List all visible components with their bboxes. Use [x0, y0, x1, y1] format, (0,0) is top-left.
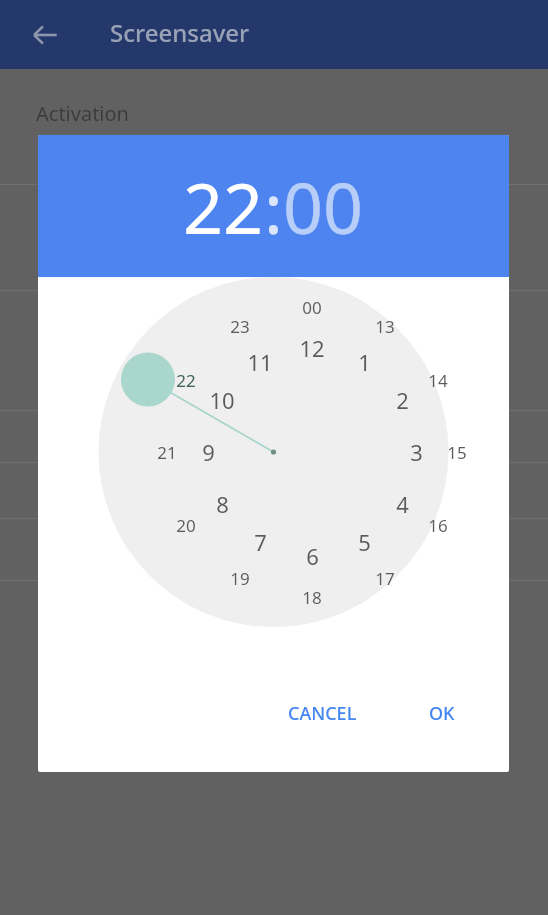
staticText: 15: [447, 441, 467, 464]
staticText: OK: [429, 701, 455, 726]
staticText: 12: [299, 333, 325, 363]
staticText: 14: [428, 369, 448, 392]
staticText: 10: [209, 385, 235, 415]
button[interactable]: 00: [283, 159, 364, 254]
staticText: 5: [358, 527, 371, 557]
staticText: 16: [428, 514, 448, 537]
button[interactable]: 22: [183, 159, 264, 254]
staticText: 11: [247, 347, 273, 377]
staticText: 00: [302, 296, 322, 319]
staticText: 21: [157, 441, 177, 464]
staticText: 17: [375, 567, 395, 590]
staticText: 23: [230, 315, 250, 338]
button[interactable]: Back: [24, 14, 66, 56]
staticText: 2: [396, 385, 409, 415]
staticText: Activation: [36, 100, 129, 127]
staticText: 22: [176, 369, 196, 392]
staticText: 18: [302, 586, 322, 609]
staticText: CANCEL: [288, 701, 357, 726]
staticText: 13: [375, 315, 395, 338]
staticText: 3: [410, 437, 423, 467]
staticText: 9: [202, 437, 215, 467]
button[interactable]: [38, 277, 509, 677]
staticText: 7: [254, 527, 267, 557]
staticText: 19: [230, 567, 250, 590]
staticText: 20: [176, 514, 196, 537]
staticText: :: [264, 159, 283, 254]
staticText: 4: [396, 489, 409, 519]
staticText: 8: [216, 489, 229, 519]
staticText: Screensaver: [110, 16, 250, 49]
button[interactable]: CANCEL: [272, 691, 373, 736]
staticText: 6: [306, 541, 319, 571]
button[interactable]: OK: [413, 691, 471, 736]
staticText: 1: [358, 347, 371, 377]
